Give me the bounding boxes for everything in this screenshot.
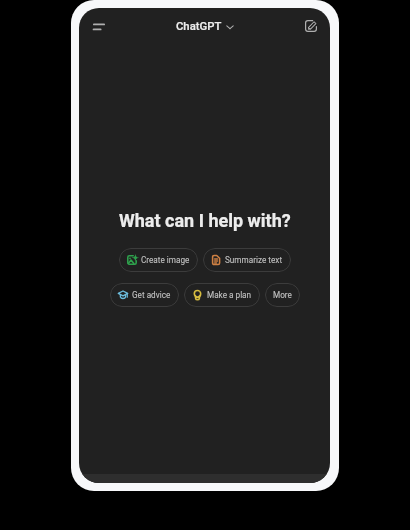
button[interactable]: Summarize text	[203, 248, 291, 272]
staticText: ChatGPT	[176, 20, 222, 33]
button[interactable]: Get advice	[110, 283, 179, 307]
button[interactable]: Create image	[119, 248, 198, 272]
staticText: Get advice	[132, 290, 171, 300]
staticText: Make a plan	[207, 290, 252, 300]
staticText: What can I help with?	[119, 210, 291, 231]
button[interactable]: ChatGPT	[170, 17, 240, 36]
button[interactable]: Open menu	[85, 13, 113, 41]
button[interactable]: Make a plan	[184, 283, 260, 307]
staticText: Create image	[141, 255, 190, 265]
button[interactable]: New chat	[297, 12, 325, 40]
staticText: More	[273, 290, 292, 300]
button[interactable]: More	[265, 283, 300, 307]
staticText: Summarize text	[225, 255, 283, 265]
